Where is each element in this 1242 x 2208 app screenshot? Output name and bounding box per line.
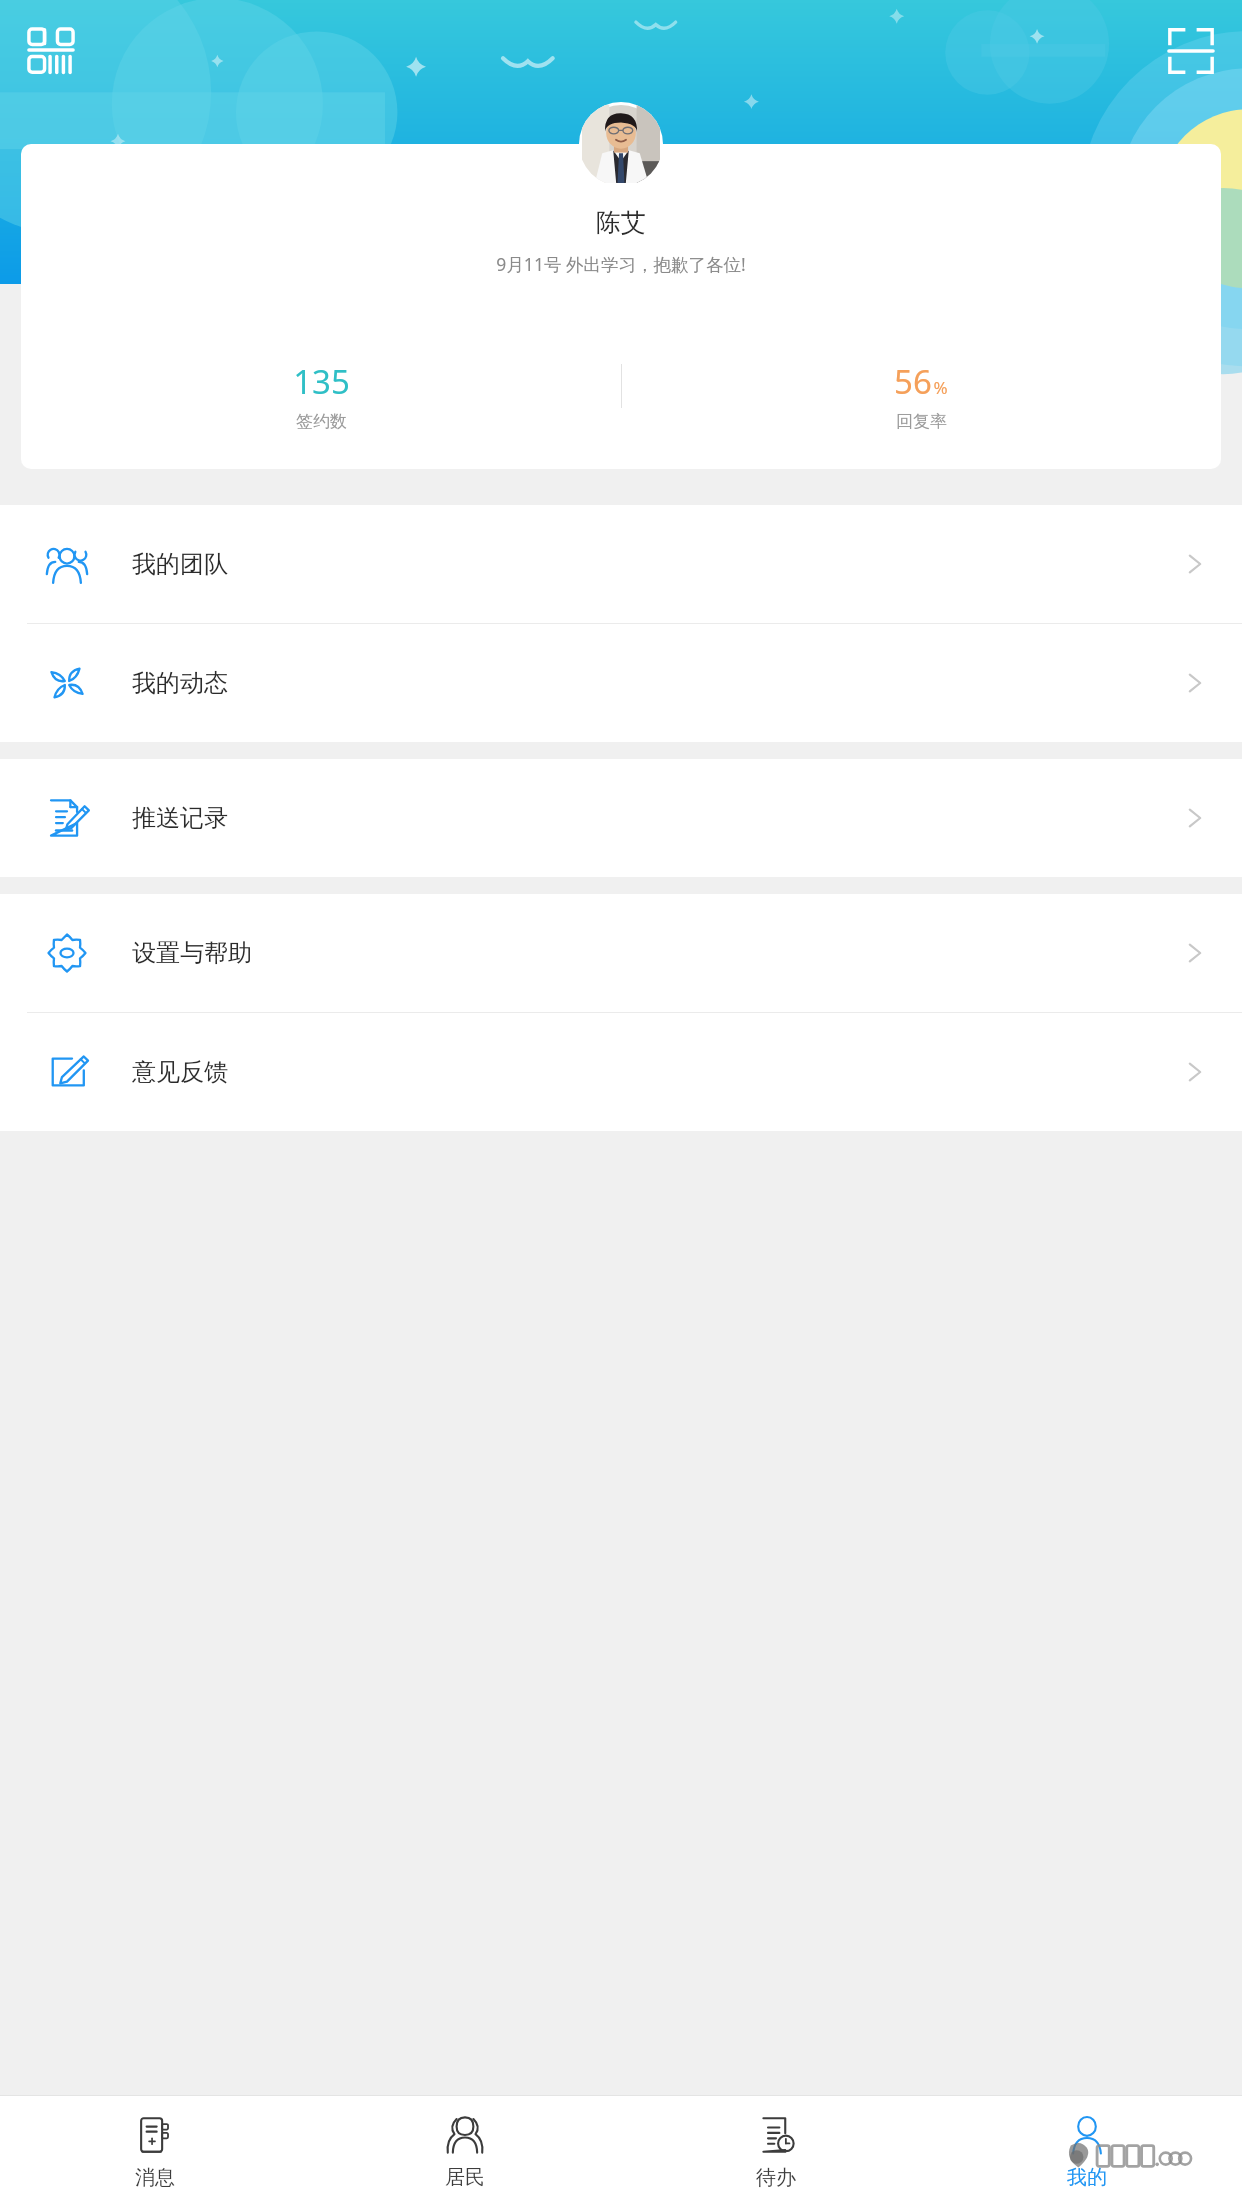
- staticText: 陈艾: [596, 207, 646, 238]
- staticText: 我的: [1067, 2165, 1107, 2190]
- button[interactable]: 意见反馈: [0, 1013, 1242, 1131]
- button[interactable]: Scan: [1158, 18, 1224, 84]
- staticText: 56: [894, 359, 932, 404]
- staticText: 135: [293, 359, 350, 404]
- staticText: 待办: [756, 2165, 796, 2190]
- button[interactable]: 我的团队: [0, 505, 1242, 623]
- staticText: 9月11号 外出学习，抱歉了各位!: [496, 252, 746, 276]
- button[interactable]: Scan QR code: [18, 18, 84, 84]
- button[interactable]: 居民: [310, 2096, 620, 2208]
- staticText: 我的动态: [132, 668, 228, 698]
- button[interactable]: 待办: [620, 2096, 931, 2208]
- button[interactable]: 设置与帮助: [0, 894, 1242, 1012]
- staticText: 推送记录: [132, 803, 228, 833]
- staticText: 回复率: [896, 411, 947, 432]
- button[interactable]: 56: [621, 354, 1221, 469]
- staticText: %: [933, 376, 948, 399]
- button[interactable]: Profile photo: [579, 102, 663, 186]
- button[interactable]: 推送记录: [0, 759, 1242, 877]
- button[interactable]: 我的: [931, 2096, 1242, 2208]
- button[interactable]: 消息: [0, 2096, 310, 2208]
- staticText: 消息: [135, 2165, 175, 2190]
- staticText: 居民: [445, 2165, 485, 2190]
- staticText: 签约数: [296, 411, 347, 432]
- staticText: 我的团队: [132, 549, 228, 579]
- button[interactable]: 我的动态: [0, 624, 1242, 742]
- staticText: 设置与帮助: [132, 938, 252, 968]
- button[interactable]: 135: [21, 354, 621, 469]
- staticText: 意见反馈: [132, 1057, 228, 1087]
